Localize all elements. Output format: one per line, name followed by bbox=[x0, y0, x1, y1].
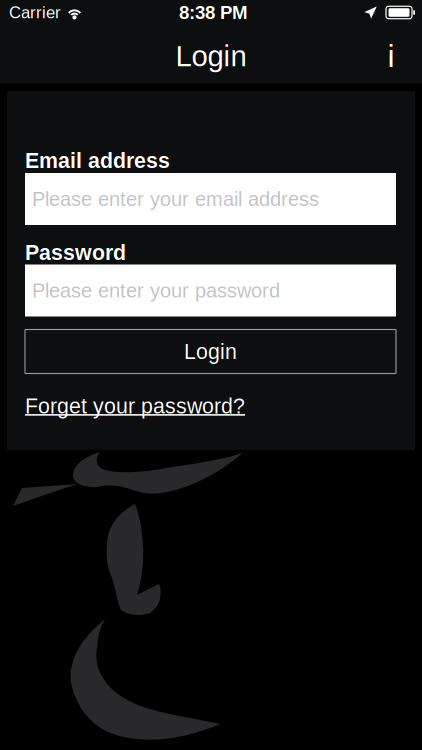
button[interactable]: Login bbox=[25, 329, 396, 373]
button[interactable]: Forget your password? bbox=[25, 394, 245, 417]
staticText: Forget your password? bbox=[25, 394, 245, 418]
staticText: Login bbox=[175, 40, 246, 72]
staticText: Please enter your password bbox=[32, 279, 280, 302]
staticText: Email address bbox=[25, 149, 170, 172]
button[interactable]: Email address field bbox=[25, 173, 396, 225]
staticText: i bbox=[387, 38, 394, 74]
staticText: Password bbox=[25, 241, 126, 264]
staticText: Please enter your email address bbox=[32, 188, 319, 210]
button[interactable]: Information bbox=[370, 29, 412, 83]
staticText: 8:38 PM bbox=[179, 2, 248, 23]
staticText: Login bbox=[184, 340, 237, 363]
button[interactable]: Password field bbox=[25, 264, 396, 316]
staticText: Carrier bbox=[9, 3, 61, 22]
